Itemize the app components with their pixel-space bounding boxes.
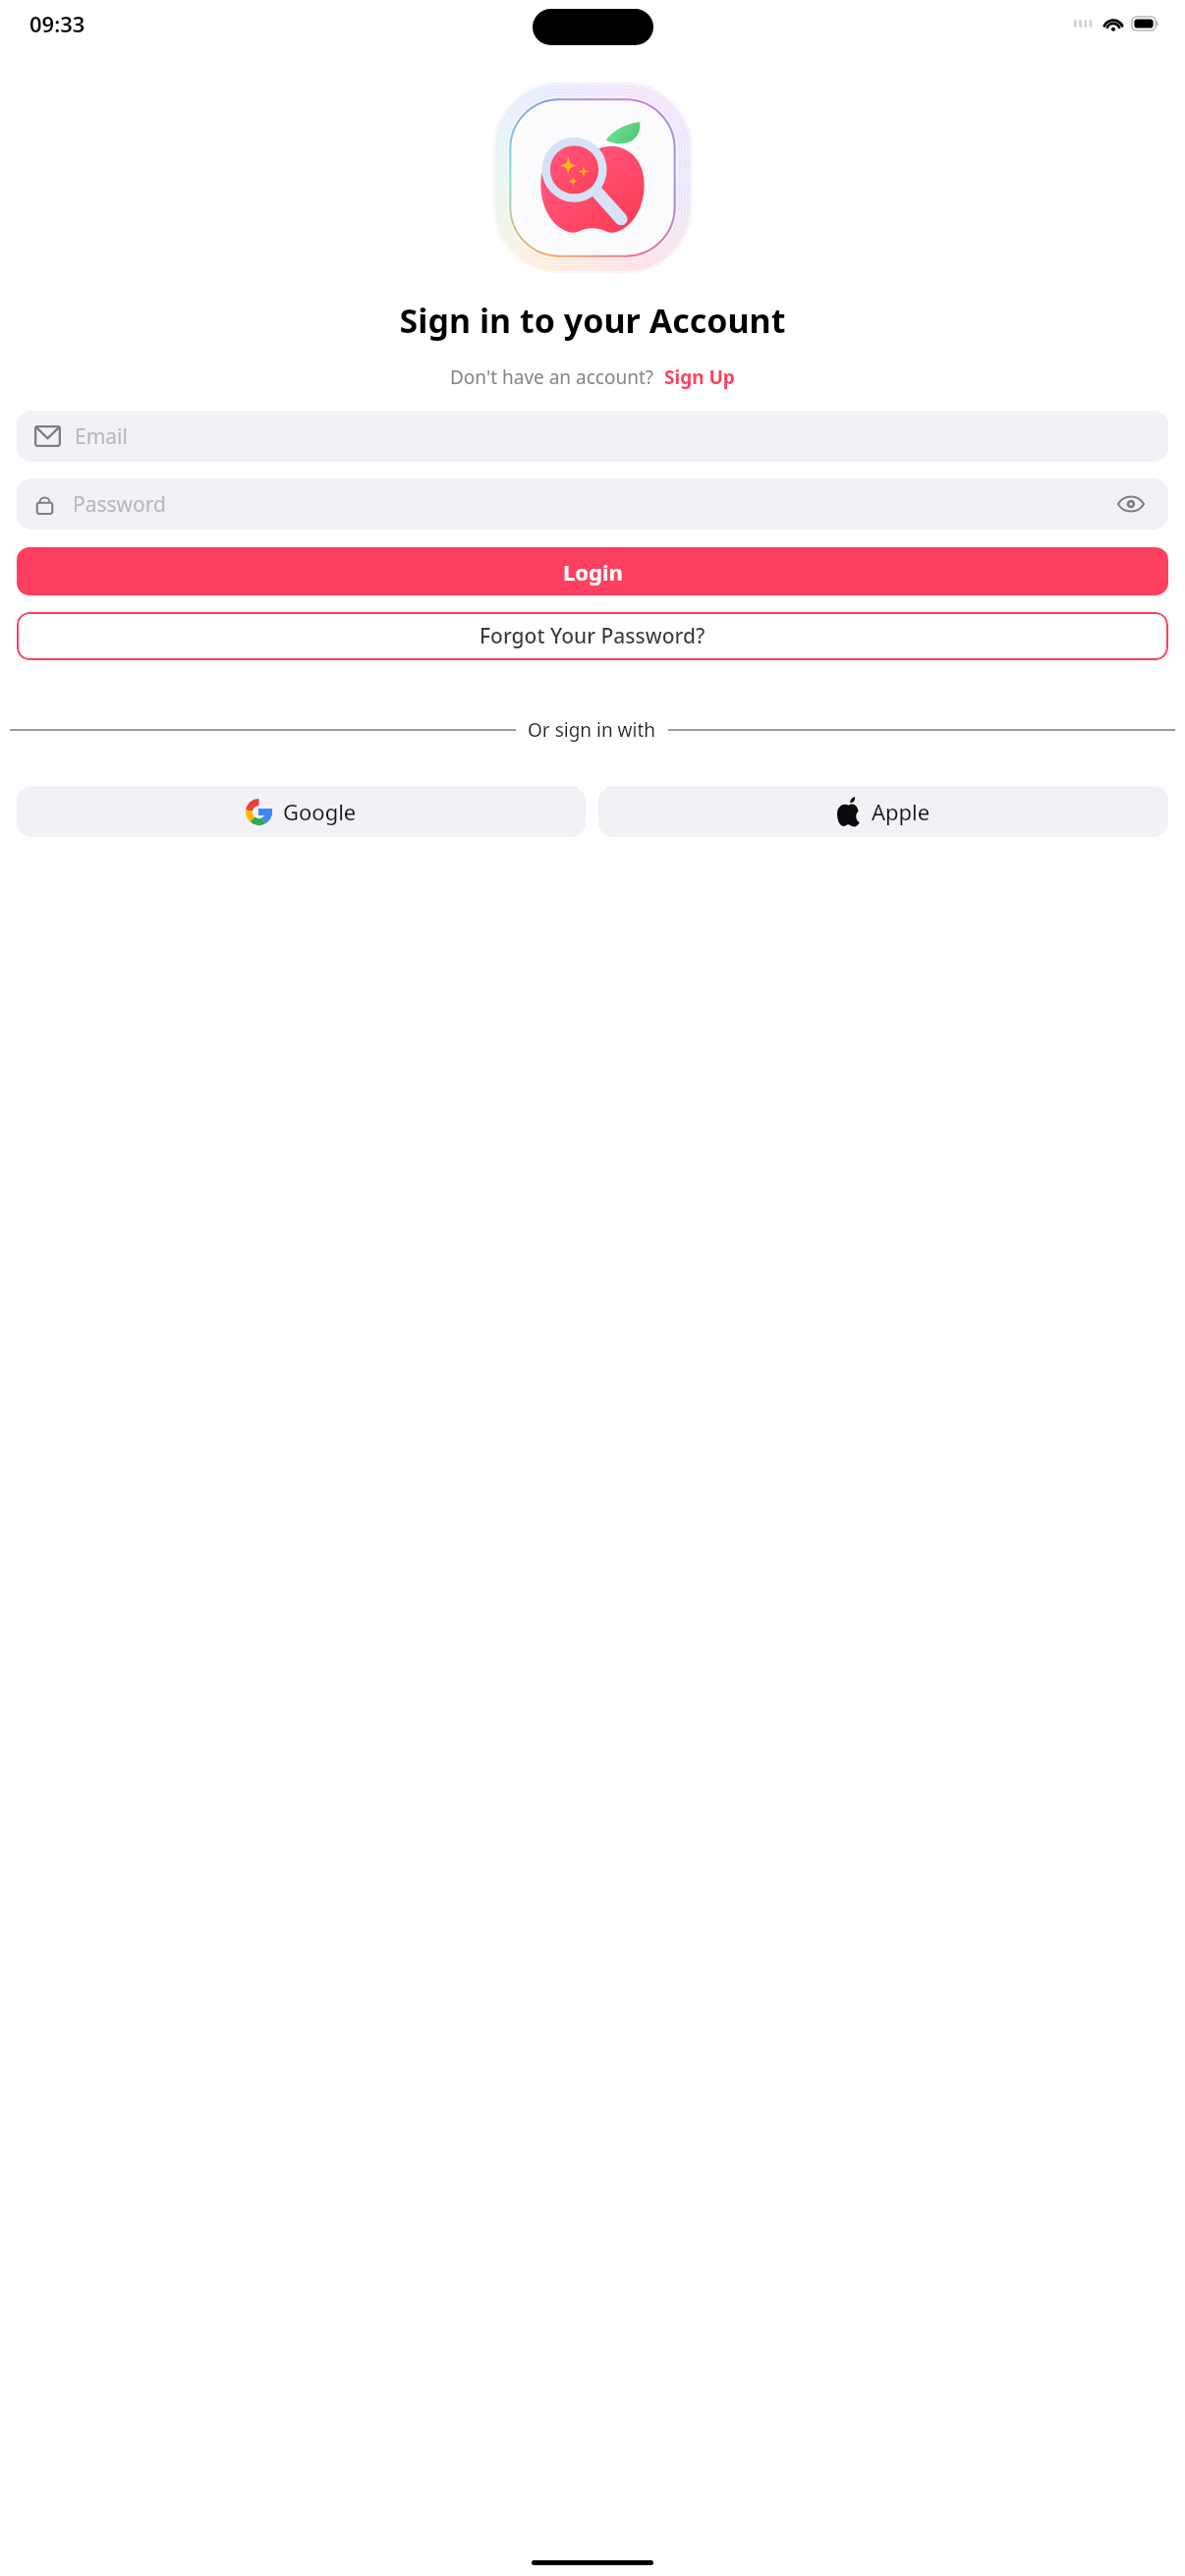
staticText: Google — [283, 797, 357, 826]
button[interactable]: Google — [17, 786, 586, 837]
button[interactable]: Sign Up — [664, 364, 735, 390]
button[interactable]: Password — [17, 478, 1168, 530]
button[interactable]: Email — [17, 411, 1168, 462]
button[interactable]: Forgot Your Password? — [17, 612, 1168, 660]
staticText: 09:33 — [29, 9, 85, 38]
staticText: Password — [73, 490, 166, 519]
staticText: Apple — [872, 797, 931, 826]
staticText: Login — [563, 557, 623, 587]
staticText: Or sign in with — [528, 717, 656, 743]
staticText: Forgot Your Password? — [480, 622, 705, 650]
button[interactable]: Show password — [1111, 484, 1151, 524]
staticText: Sign Up — [664, 364, 735, 390]
button[interactable]: Apple — [598, 786, 1168, 837]
button[interactable]: Login — [17, 547, 1168, 595]
staticText: Sign in to your Account — [0, 298, 1185, 343]
staticText: Don't have an account? — [450, 364, 654, 390]
staticText: Email — [75, 422, 128, 451]
